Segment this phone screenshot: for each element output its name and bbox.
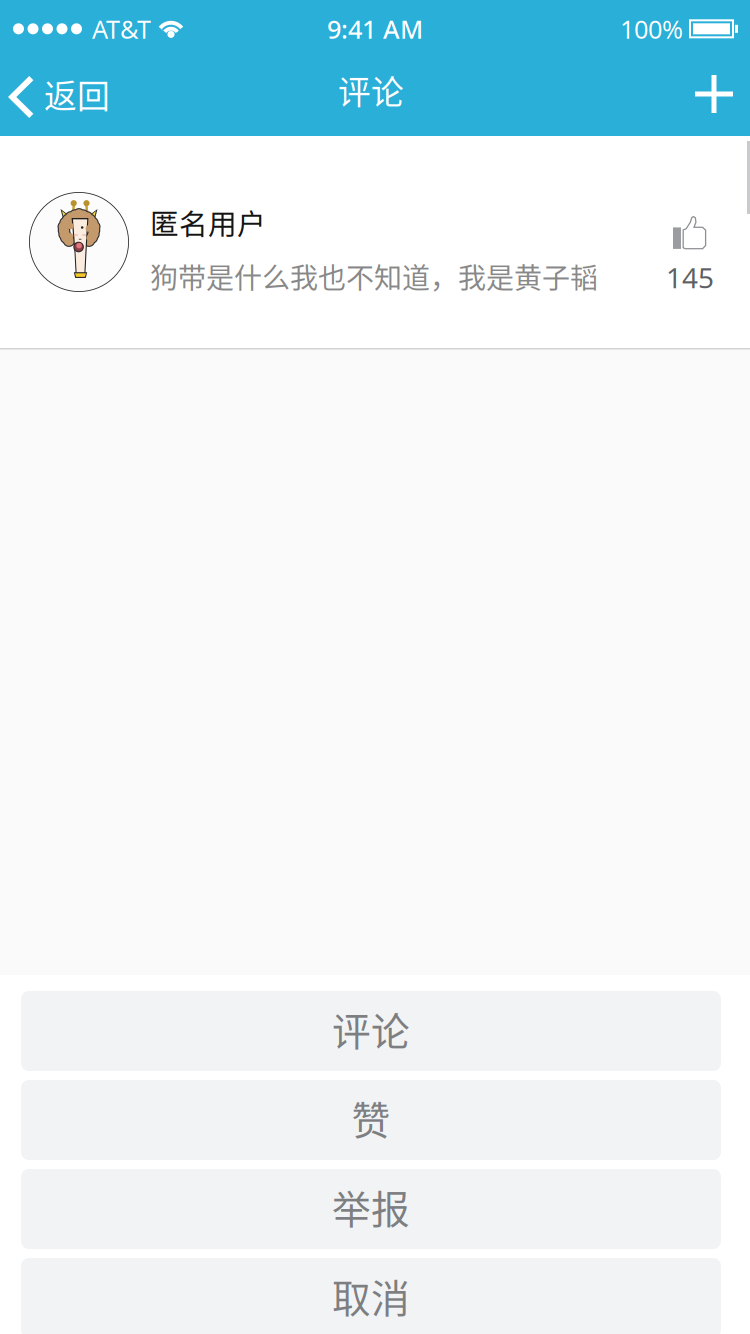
staticText: 返回 bbox=[44, 70, 110, 118]
button[interactable]: New comment bbox=[678, 46, 750, 142]
button[interactable]: 取消 bbox=[21, 1258, 721, 1334]
button[interactable]: 评论 bbox=[21, 991, 721, 1071]
staticText: 评论 bbox=[338, 66, 404, 114]
staticText: 145 bbox=[666, 259, 714, 296]
button[interactable]: 匿名用户 bbox=[0, 136, 750, 348]
staticText: 100% bbox=[620, 12, 683, 46]
staticText: 狗带是什么我也不知道，我是黄子韬 bbox=[150, 256, 598, 296]
staticText: 9:41 AM bbox=[327, 12, 423, 46]
staticText: 匿名用户 bbox=[150, 201, 266, 243]
staticText: 取消 bbox=[332, 1268, 410, 1324]
button[interactable]: 145 bbox=[666, 202, 750, 282]
staticText: 评论 bbox=[332, 1001, 410, 1057]
button[interactable]: 举报 bbox=[21, 1169, 721, 1249]
staticText: 举报 bbox=[332, 1179, 410, 1235]
button[interactable]: 赞 bbox=[21, 1080, 721, 1160]
staticText: 赞 bbox=[351, 1090, 390, 1146]
staticText: AT&T bbox=[92, 12, 151, 46]
button[interactable]: Back bbox=[0, 46, 124, 142]
